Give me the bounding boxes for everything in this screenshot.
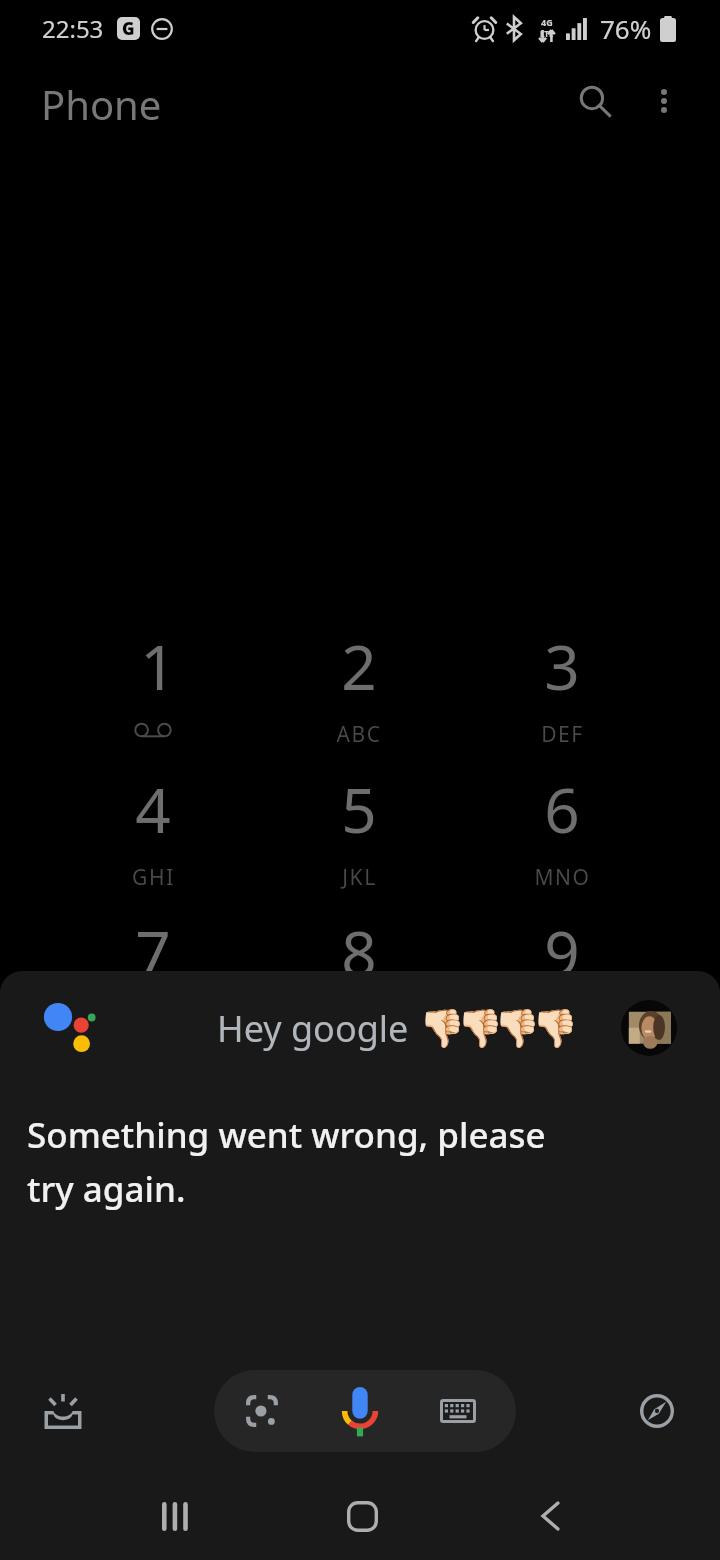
button[interactable]: Search (567, 73, 623, 129)
button[interactable]: Recents (131, 1486, 219, 1546)
staticText: 22:53 (42, 12, 104, 45)
button[interactable] (269, 898, 449, 1040)
button[interactable]: Snapshot (37, 1385, 89, 1437)
staticText: ABC (336, 720, 382, 749)
staticText: 8 (341, 910, 377, 980)
staticText: 4G (541, 16, 553, 28)
staticText: 5 (341, 767, 377, 837)
staticText: 👎🏻 (457, 1007, 495, 1050)
button[interactable]: Keyboard (424, 1377, 492, 1445)
staticText: 👎🏻 (419, 1007, 457, 1050)
button[interactable]: More options (636, 73, 692, 129)
staticText: MNO (534, 863, 591, 892)
staticText: 1 (140, 624, 176, 694)
button[interactable] (472, 898, 652, 1040)
staticText: 👎🏻 (494, 1007, 532, 1050)
staticText: Hey google (217, 1004, 409, 1053)
button[interactable]: Voice search (326, 1377, 394, 1445)
staticText: Phone (41, 77, 162, 131)
button[interactable]: Google Lens (228, 1377, 296, 1445)
button[interactable] (472, 755, 652, 897)
staticText: 3 (544, 624, 580, 694)
staticText: TUV (337, 1006, 382, 1035)
staticText: Something went wrong, please try again. (27, 1111, 546, 1213)
staticText: 2 (341, 624, 377, 694)
button[interactable]: Account (621, 1000, 677, 1056)
staticText: WXYZ (531, 1006, 594, 1035)
staticText: DEF (541, 720, 584, 749)
button[interactable] (63, 898, 243, 1040)
staticText: 4 (135, 767, 171, 837)
staticText: 76% (600, 11, 652, 46)
button[interactable] (269, 612, 449, 754)
staticText: JKL (342, 863, 377, 892)
staticText: G (122, 17, 135, 40)
staticText: GHI (132, 863, 175, 892)
button[interactable]: Back (506, 1486, 594, 1546)
button[interactable] (63, 612, 243, 754)
button[interactable] (63, 755, 243, 897)
staticText: 9 (544, 910, 580, 980)
staticText: 7 (135, 910, 171, 980)
staticText: 👎🏻 (532, 1007, 570, 1050)
button[interactable] (269, 755, 449, 897)
staticText: 6 (544, 767, 580, 837)
button[interactable] (472, 612, 652, 754)
button[interactable]: Explore (631, 1385, 683, 1437)
staticText: LTE (540, 28, 554, 39)
button[interactable]: Home (318, 1486, 406, 1546)
